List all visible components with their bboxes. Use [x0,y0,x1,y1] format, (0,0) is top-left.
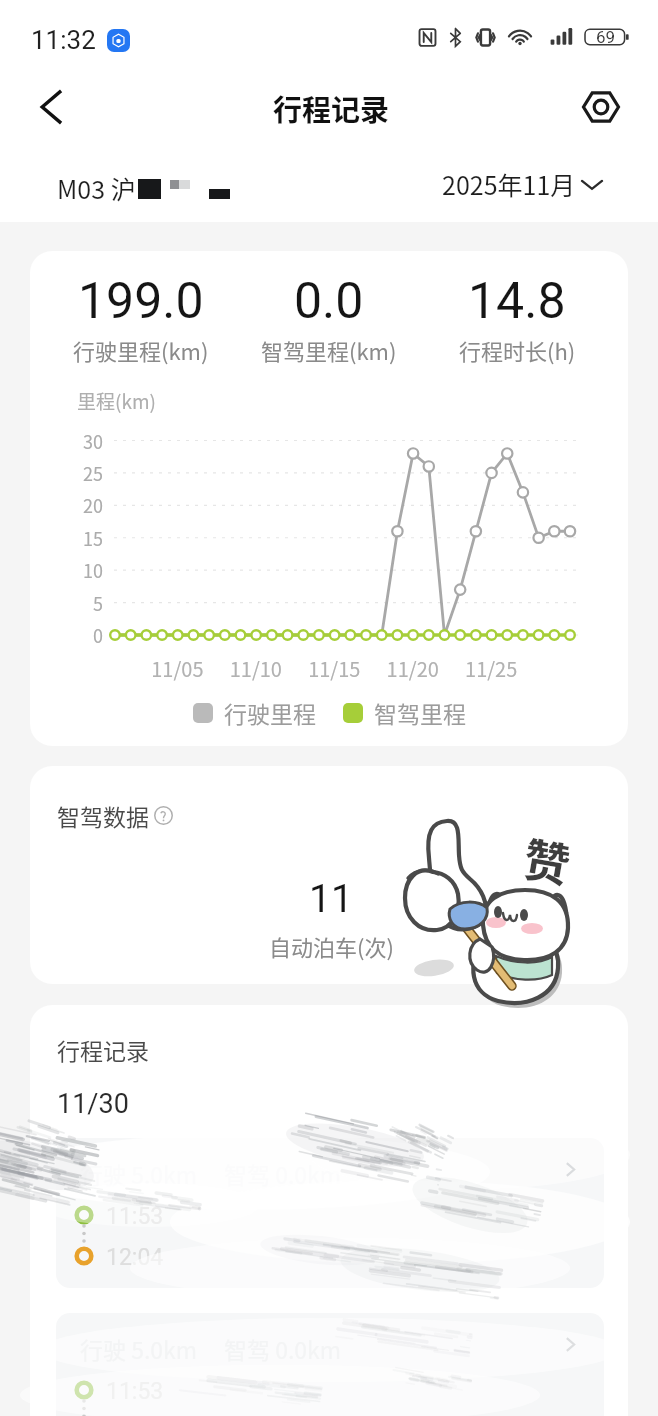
staticText: 里程(km) [77,387,156,415]
staticText: 智驾里程 [374,696,466,729]
staticText: 自动泊车(次) [269,930,394,962]
staticText: 11:53 [106,1203,164,1230]
staticText: 12:04 [106,1244,164,1271]
staticText: 0.0 [294,272,364,331]
staticText: 14.8 [468,272,566,331]
staticText: 11/30 [57,1088,129,1120]
staticText: 69 [596,27,616,47]
button[interactable]: 行驶 5.0km [56,1313,604,1416]
staticText: 行驶 5.0km [80,1157,198,1190]
staticText: 智驾 0.0km [224,1157,342,1190]
staticText: 行驶里程(km) [73,334,209,366]
staticText: 行程记录 [273,87,390,129]
staticText: 行程时长(h) [459,334,576,366]
button[interactable]: Settings [572,78,630,136]
staticText: 智驾数据 [57,799,149,832]
staticText: 2025年11月 [442,166,576,202]
staticText: M03 沪 [57,170,136,206]
staticText: 行驶里程 [224,696,316,729]
staticText: 11 [309,876,353,922]
staticText: 智驾里程(km) [261,334,397,366]
button[interactable]: Back [22,78,80,136]
button[interactable]: 2025年11月 [442,166,603,202]
staticText: 行程记录 [57,1033,149,1066]
staticText: 11:32 [31,25,96,55]
staticText: 199.0 [78,272,204,331]
staticText: 11:53 [106,1378,164,1405]
button[interactable]: 行驶 5.0km [56,1138,604,1288]
